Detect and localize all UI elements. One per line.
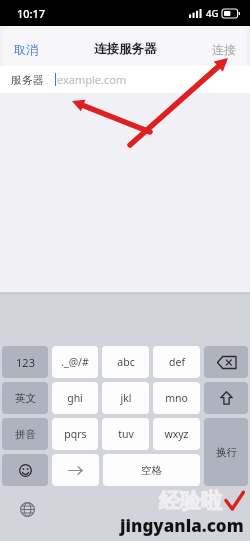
staticText: 空格: [141, 464, 162, 477]
staticText: abc: [117, 355, 135, 369]
button[interactable]: Emoji: [2, 454, 48, 486]
staticText: pqrs: [64, 427, 87, 441]
button[interactable]: Next: [52, 454, 99, 486]
button[interactable]: 取消: [3, 36, 49, 63]
staticText: 10:17: [17, 6, 46, 21]
staticText: ghi: [67, 391, 83, 405]
button[interactable]: 连接: [201, 36, 247, 63]
staticText: 拼音: [15, 428, 36, 441]
button[interactable]: tuv: [102, 418, 149, 450]
button[interactable]: 123: [2, 346, 48, 378]
staticText: jkl: [120, 391, 132, 405]
button[interactable]: pqrs: [52, 418, 98, 450]
staticText: 123: [16, 355, 35, 370]
button[interactable]: ghi: [52, 382, 98, 414]
button[interactable]: 拼音: [2, 418, 48, 450]
button[interactable]: Change keyboard: [14, 496, 40, 522]
button[interactable]: 空格: [103, 454, 200, 486]
button[interactable]: 英文: [2, 382, 48, 414]
button[interactable]: wxyz: [153, 418, 200, 450]
staticText: def: [169, 355, 185, 369]
button[interactable]: 服务器: [0, 66, 250, 93]
button[interactable]: 换行: [204, 418, 248, 486]
staticText: example.com: [57, 72, 127, 87]
staticText: wxyz: [164, 427, 189, 441]
button[interactable]: def: [153, 346, 200, 378]
button[interactable]: Delete: [204, 346, 248, 378]
staticText: 服务器: [11, 73, 44, 87]
staticText: mno: [165, 391, 188, 405]
staticText: 连接: [212, 42, 236, 57]
staticText: 4G: [206, 7, 219, 20]
staticText: 换行: [216, 446, 237, 459]
staticText: jingyanla.com: [120, 514, 244, 537]
button[interactable]: Shift: [204, 382, 248, 414]
staticText: 经验啦: [159, 488, 222, 514]
staticText: 连接服务器: [94, 41, 157, 57]
button[interactable]: abc: [102, 346, 149, 378]
button[interactable]: ._@/#: [52, 346, 98, 378]
button[interactable]: mno: [153, 382, 200, 414]
staticText: 取消: [14, 42, 38, 57]
staticText: ._@/#: [61, 355, 89, 369]
staticText: 英文: [15, 392, 36, 405]
staticText: tuv: [118, 427, 134, 441]
button[interactable]: jkl: [102, 382, 149, 414]
